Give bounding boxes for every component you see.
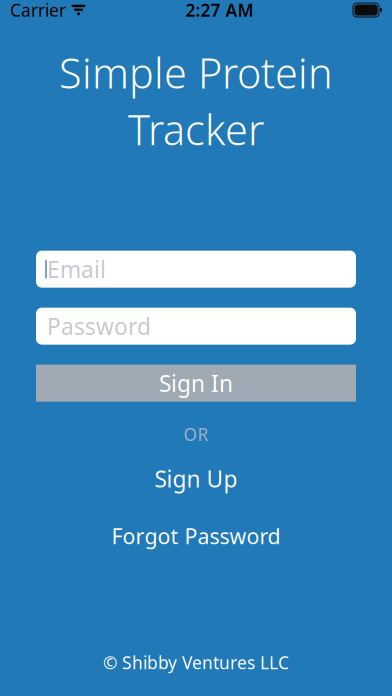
staticText: Simple Protein [59, 45, 333, 100]
button[interactable]: Email [36, 251, 356, 288]
staticText: Forgot Password [111, 522, 280, 550]
staticText: Sign In [159, 368, 233, 398]
staticText: 2:27 AM [185, 0, 253, 21]
staticText: © Shibby Ventures LLC [103, 651, 289, 674]
button[interactable]: Sign In [36, 365, 356, 402]
staticText: Email [47, 254, 106, 284]
staticText: Tracker [128, 102, 264, 157]
button[interactable]: Forgot Password [87, 515, 304, 557]
button[interactable]: Password [36, 308, 356, 345]
staticText: Password [47, 311, 151, 341]
button[interactable]: Sign Up [130, 457, 261, 501]
staticText: Carrier [10, 0, 66, 21]
staticText: Sign Up [154, 464, 237, 494]
staticText: OR [183, 423, 208, 446]
